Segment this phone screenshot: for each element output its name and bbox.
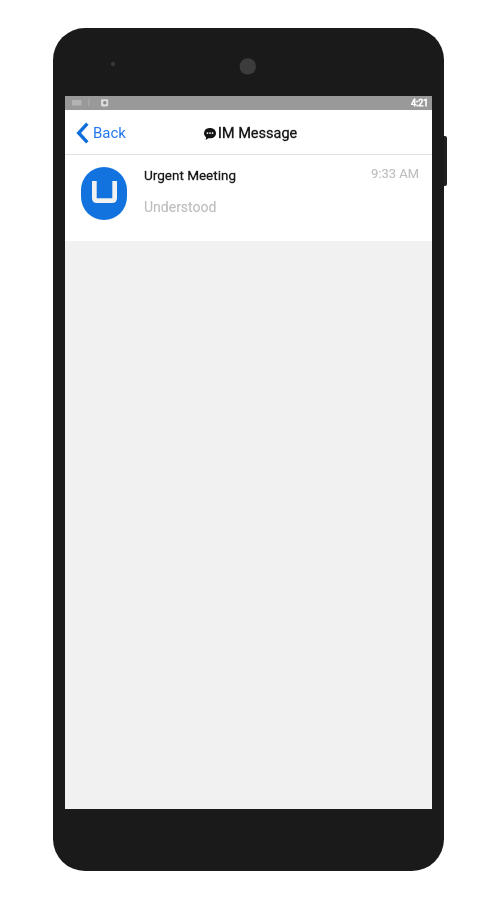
staticText: 9:33 AM xyxy=(371,166,420,181)
staticText: 4:21 xyxy=(411,98,429,109)
button[interactable]: Urgent Meeting xyxy=(65,155,432,241)
button[interactable]: Back xyxy=(65,114,136,152)
staticText: IM Message xyxy=(218,125,298,142)
staticText: Back xyxy=(93,124,126,142)
staticText: Understood xyxy=(144,199,217,215)
staticText: Urgent Meeting xyxy=(144,167,237,183)
